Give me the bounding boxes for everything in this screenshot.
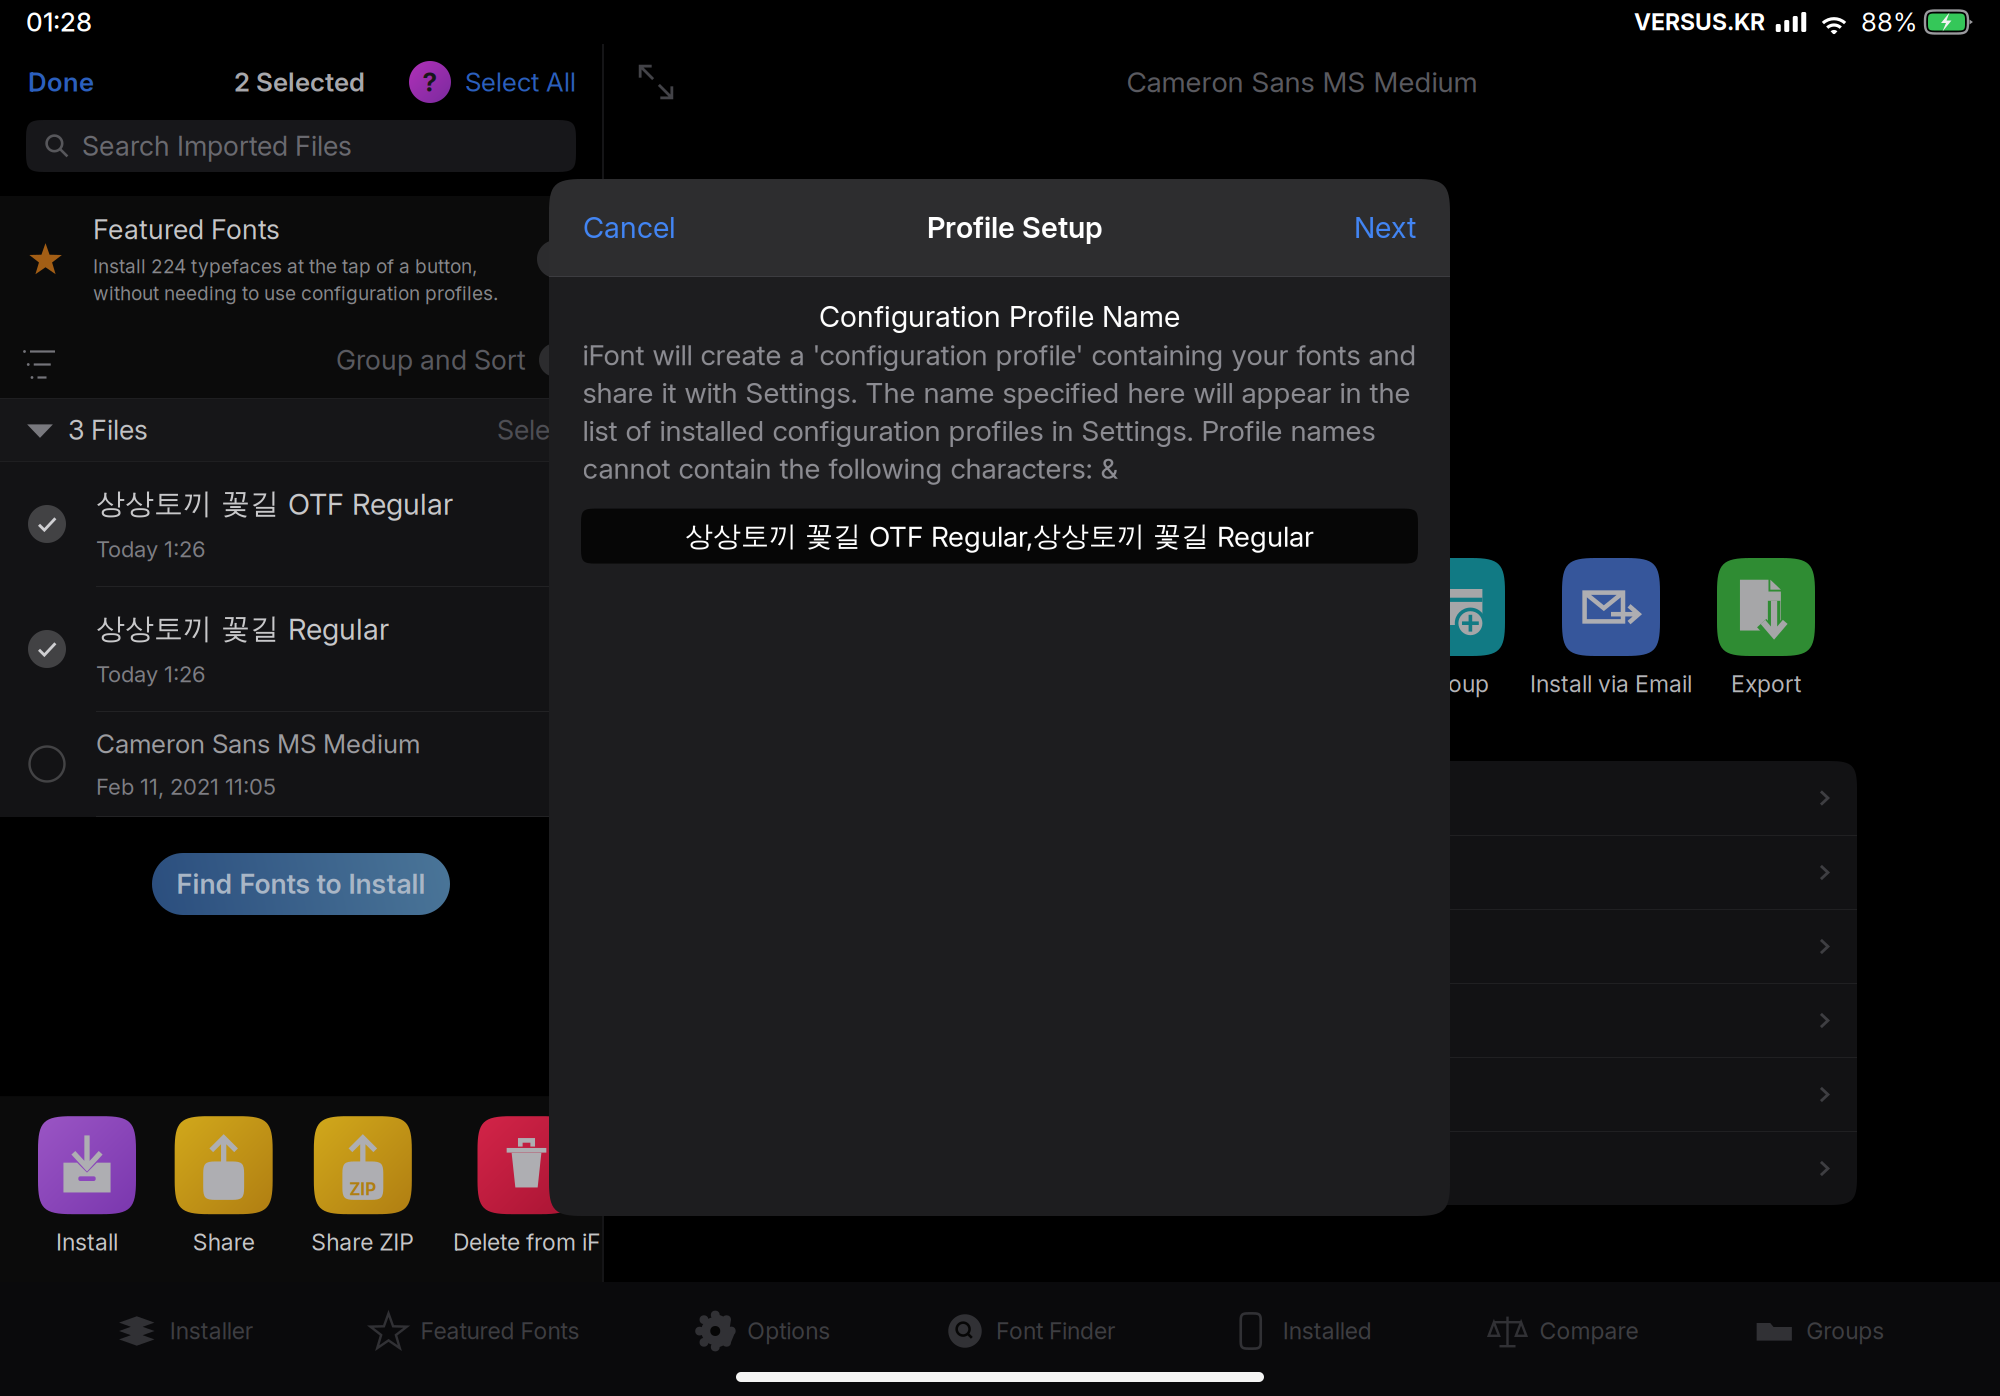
staticText: Group xyxy=(1423,670,1489,698)
button[interactable]: Group and Sort xyxy=(0,322,602,398)
button[interactable]: Install via Email xyxy=(1562,558,1660,698)
staticText: share it with Settings. The name specifi… xyxy=(582,376,1410,410)
button[interactable]: Full screen xyxy=(638,64,674,100)
button[interactable]: Font detail row xyxy=(767,761,1857,835)
button[interactable]: ZIP xyxy=(311,1116,414,1256)
button[interactable]: Cameron Sans MS Medium xyxy=(0,712,602,816)
staticText: 88% xyxy=(1861,6,1917,38)
button[interactable]: Help xyxy=(409,61,451,103)
staticText: without needing to use configuration pro… xyxy=(93,282,498,305)
button[interactable]: Group xyxy=(1407,558,1505,698)
staticText: Cameron Sans MS Medium xyxy=(1126,65,1477,99)
staticText: list of installed configuration profiles… xyxy=(582,414,1375,448)
staticText: Delete from iF xyxy=(453,1228,600,1256)
button[interactable]: 3 Files xyxy=(26,414,148,446)
staticText: ZIP xyxy=(349,1179,376,1199)
staticText: 상상토끼 꽃길 OTF Regular,상상토끼 꽃길 Regular xyxy=(685,518,1314,554)
staticText: Install 224 typefaces at the tap of a bu… xyxy=(93,255,477,278)
staticText: Group and Sort xyxy=(336,344,526,376)
staticText: Find Fonts to Install xyxy=(176,868,425,900)
button[interactable]: Font detail row xyxy=(767,1132,1857,1205)
staticText: 상상토끼 꽃길 Regular xyxy=(96,610,389,647)
button[interactable]: Delete from iF xyxy=(453,1116,600,1256)
button[interactable]: Font detail row xyxy=(767,836,1857,909)
button[interactable]: Font detail row xyxy=(767,984,1857,1057)
button[interactable]: 상상토끼 꽃길 OTF Regular xyxy=(0,462,602,586)
staticText: Featured Fonts xyxy=(93,213,280,246)
staticText: Feb 11, 2021 11:05 xyxy=(96,773,276,800)
staticText: Compare xyxy=(1539,1317,1638,1345)
staticText: Options xyxy=(747,1317,830,1345)
staticText: Share ZIP xyxy=(311,1228,414,1256)
staticText: Install xyxy=(56,1228,118,1256)
staticText: Select All xyxy=(465,66,576,98)
staticText: 3 Files xyxy=(68,414,148,446)
staticText: Configuration Profile Name xyxy=(819,299,1180,334)
staticText: Cameron Sans MS Medium xyxy=(96,728,420,759)
staticText: Search Imported Files xyxy=(82,130,352,162)
button[interactable]: Select All xyxy=(465,66,576,98)
button[interactable]: Find Fonts to Install xyxy=(152,853,450,915)
button[interactable]: Featured Fonts xyxy=(368,1311,579,1351)
staticText: Featured Fonts xyxy=(420,1317,579,1345)
staticText: cannot contain the following characters:… xyxy=(582,452,1118,486)
button[interactable]: Share xyxy=(175,1116,273,1256)
button[interactable]: Next xyxy=(1354,210,1416,245)
staticText: Today 1:26 xyxy=(96,536,206,563)
button[interactable]: 상상토끼 꽃길 OTF Regular,상상토끼 꽃길 Regular xyxy=(581,509,1418,564)
staticText: Done xyxy=(28,66,94,98)
staticText: Profile Setup xyxy=(927,210,1103,245)
button[interactable]: Installed xyxy=(1231,1311,1372,1351)
staticText: Select xyxy=(497,414,574,446)
staticText: 2 Selected xyxy=(234,66,365,98)
button[interactable]: Export xyxy=(1717,558,1815,698)
button[interactable]: Cancel xyxy=(583,210,676,245)
staticText: Installed xyxy=(1283,1317,1372,1345)
staticText: 01:28 xyxy=(26,6,92,38)
staticText: Share xyxy=(193,1228,255,1256)
staticText: Today 1:26 xyxy=(96,661,206,688)
staticText: Export xyxy=(1731,670,1801,698)
button[interactable]: Options xyxy=(695,1311,830,1351)
button[interactable]: Install xyxy=(38,1116,136,1256)
button[interactable]: Featured Fonts xyxy=(0,196,602,322)
button[interactable]: Font Finder xyxy=(946,1312,1115,1350)
staticText: Installer xyxy=(170,1317,253,1345)
button[interactable]: Groups xyxy=(1754,1311,1884,1351)
staticText: Groups xyxy=(1806,1317,1884,1345)
button[interactable]: 상상토끼 꽃길 Regular xyxy=(0,587,602,711)
button[interactable]: Font detail row xyxy=(767,910,1857,983)
button[interactable]: Compare xyxy=(1487,1311,1638,1351)
staticText: 상상토끼 꽃길 OTF Regular xyxy=(96,485,453,522)
staticText: Cancel xyxy=(583,210,676,245)
staticText: VERSUS.KR xyxy=(1634,8,1765,36)
staticText: Next xyxy=(1354,210,1416,245)
button[interactable]: Font detail row xyxy=(767,1058,1857,1131)
button[interactable]: Installer xyxy=(116,1310,253,1352)
staticText: Install via Email xyxy=(1530,670,1692,698)
staticText: iFont will create a 'configuration profi… xyxy=(582,338,1416,372)
button[interactable]: Select xyxy=(497,414,574,446)
staticText: ? xyxy=(422,66,437,98)
staticText: Font Finder xyxy=(996,1317,1115,1345)
button[interactable]: Done xyxy=(28,66,94,98)
